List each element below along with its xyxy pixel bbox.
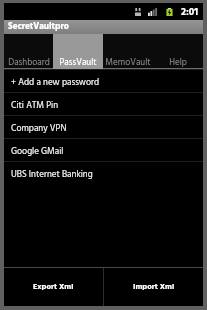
staticText: 2:01 xyxy=(181,4,199,20)
staticText: Export Xml xyxy=(33,281,74,294)
staticText: Dashboard xyxy=(8,56,50,70)
button[interactable]: UBS Internet Banking xyxy=(4,162,203,184)
button[interactable]: Citi ATM Pin xyxy=(4,93,203,115)
staticText: UBS Internet Banking xyxy=(11,168,93,182)
staticText: PassVault xyxy=(59,56,97,70)
staticText: Help xyxy=(169,56,187,70)
button[interactable]: + Add a new password xyxy=(4,70,203,92)
button[interactable]: PassVault xyxy=(53,34,103,69)
button[interactable]: Help xyxy=(153,34,203,69)
other: USB debugging xyxy=(135,8,141,16)
button[interactable]: Company VPN xyxy=(4,116,203,138)
staticText: Google GMail xyxy=(11,145,64,159)
staticText: Import Xml xyxy=(133,281,175,294)
button[interactable]: Export Xml xyxy=(4,268,103,306)
staticText: + Add a new password xyxy=(11,76,100,90)
button[interactable]: Google GMail xyxy=(4,139,203,161)
other: Signal strength xyxy=(148,8,157,16)
other: Battery xyxy=(166,8,173,16)
staticText: Citi ATM Pin xyxy=(11,99,59,113)
staticText: MemoVault xyxy=(105,56,151,70)
button[interactable]: Import Xml xyxy=(104,268,203,306)
button[interactable]: MemoVault xyxy=(103,34,153,69)
button[interactable]: Dashboard xyxy=(4,34,53,69)
staticText: SecretVaultpro xyxy=(8,20,69,34)
staticText: Company VPN xyxy=(11,122,67,136)
